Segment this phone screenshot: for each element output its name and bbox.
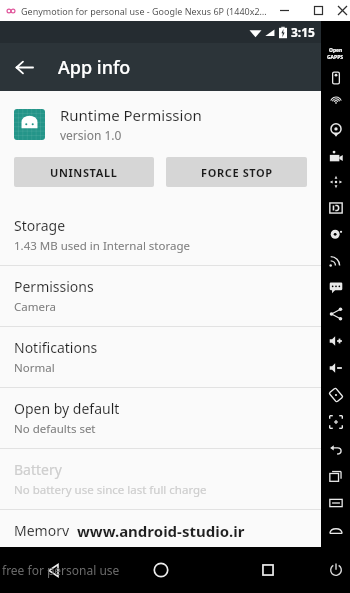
button[interactable]: maximize: [301, 0, 335, 21]
staticText: free for personal use: [2, 562, 120, 578]
button[interactable]: Permissions: [0, 266, 321, 326]
staticText: Open: [329, 47, 343, 54]
button[interactable]: close: [335, 0, 350, 21]
button[interactable]: Home: [107, 547, 214, 593]
button[interactable]: Network: [321, 247, 350, 273]
button[interactable]: Volume down: [321, 354, 350, 381]
staticText: Camera: [14, 299, 56, 315]
staticText: Runtime Permission: [60, 105, 202, 125]
staticText: 1.43 MB used in Internal storage: [14, 238, 190, 254]
button[interactable]: FORCE STOP: [166, 157, 307, 187]
button[interactable]: Identifiers: [321, 195, 350, 221]
staticText: No defaults set: [14, 421, 96, 437]
staticText: No battery use since last full charge: [14, 482, 207, 498]
staticText: Permissions: [14, 277, 94, 296]
staticText: UNINSTALL: [50, 165, 118, 180]
button[interactable]: UNINSTALL: [14, 157, 154, 187]
button[interactable]: Camera: [321, 143, 350, 169]
button[interactable]: Share: [321, 300, 350, 327]
button[interactable]: GPS: [321, 91, 350, 117]
button[interactable]: Back: [0, 43, 48, 91]
button[interactable]: Recents: [321, 462, 350, 489]
staticText: Normal: [14, 360, 55, 376]
button[interactable]: Battery widget: [321, 65, 350, 91]
staticText: Open by default: [14, 399, 120, 418]
button[interactable]: Recent apps: [214, 547, 321, 593]
staticText: FORCE STOP: [201, 165, 273, 180]
button[interactable]: Open by default: [0, 388, 321, 448]
button[interactable]: minimize: [267, 0, 301, 21]
button[interactable]: Storage: [0, 205, 321, 265]
staticText: Battery: [14, 460, 62, 479]
staticText: Storage: [14, 216, 66, 235]
button[interactable]: Power: [321, 547, 350, 593]
staticText: Genymotion for personal use - Google Nex…: [21, 5, 267, 17]
staticText: GAPPS: [327, 54, 344, 61]
button[interactable]: Back: [0, 547, 107, 593]
button[interactable]: Accelerometer: [321, 169, 350, 195]
button[interactable]: Rotate: [321, 381, 350, 408]
button[interactable]: Back: [321, 435, 350, 462]
staticText: Notifications: [14, 338, 98, 357]
button[interactable]: Home: [321, 516, 350, 543]
staticText: Memory: [14, 521, 70, 536]
button[interactable]: Memory: [0, 510, 321, 547]
staticText: App info: [58, 55, 131, 80]
button[interactable]: Runtime Permission: [0, 91, 321, 153]
button[interactable]: SMS: [321, 273, 350, 300]
staticText: version 1.0: [60, 127, 122, 143]
button[interactable]: Notifications: [0, 327, 321, 387]
button[interactable]: Fullscreen: [321, 408, 350, 435]
staticText: 3:15: [291, 24, 315, 40]
button[interactable]: Disk IO: [321, 221, 350, 247]
staticText: www.android-studio.ir: [77, 521, 245, 541]
button[interactable]: Menu: [321, 489, 350, 516]
button[interactable]: Volume up: [321, 327, 350, 354]
button[interactable]: Location: [321, 117, 350, 143]
button[interactable]: Battery: [0, 449, 321, 509]
